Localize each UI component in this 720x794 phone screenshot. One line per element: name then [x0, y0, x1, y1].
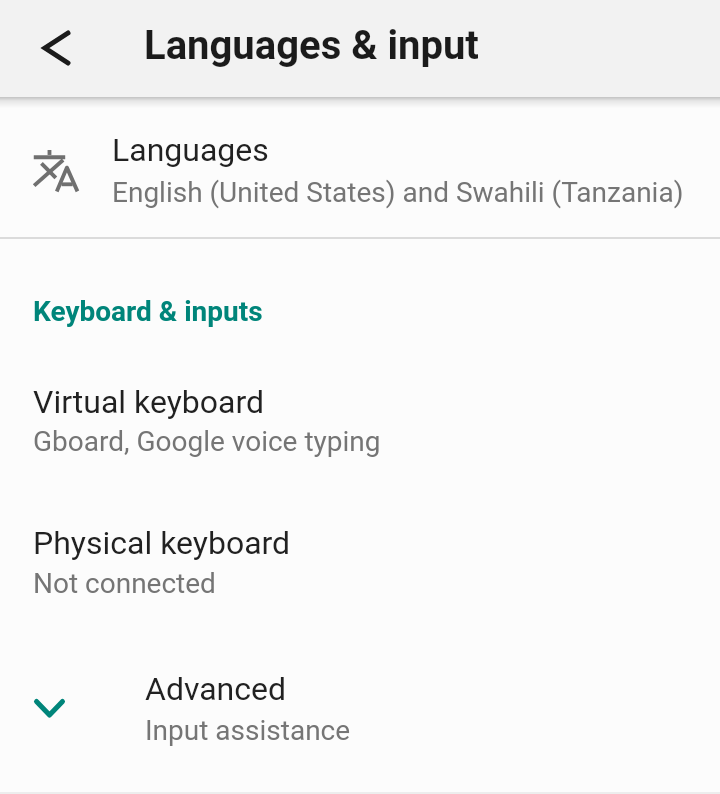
staticText: Input assistance	[145, 714, 351, 747]
button[interactable]: Languages	[0, 105, 720, 237]
staticText: Virtual keyboard	[33, 383, 265, 421]
button[interactable]: Advanced	[0, 652, 720, 764]
staticText: Not connected	[33, 567, 216, 600]
staticText: Advanced	[145, 670, 287, 708]
staticText: Keyboard & inputs	[33, 295, 263, 328]
staticText: Languages	[112, 131, 269, 169]
staticText: Physical keyboard	[33, 524, 291, 562]
staticText: Gboard, Google voice typing	[33, 425, 381, 458]
button[interactable]	[26, 17, 86, 77]
button[interactable]: Virtual keyboard	[0, 365, 720, 477]
staticText: Languages & input	[144, 22, 479, 69]
button[interactable]: Physical keyboard	[0, 508, 720, 620]
staticText: English (United States) and Swahili (Tan…	[112, 176, 684, 209]
